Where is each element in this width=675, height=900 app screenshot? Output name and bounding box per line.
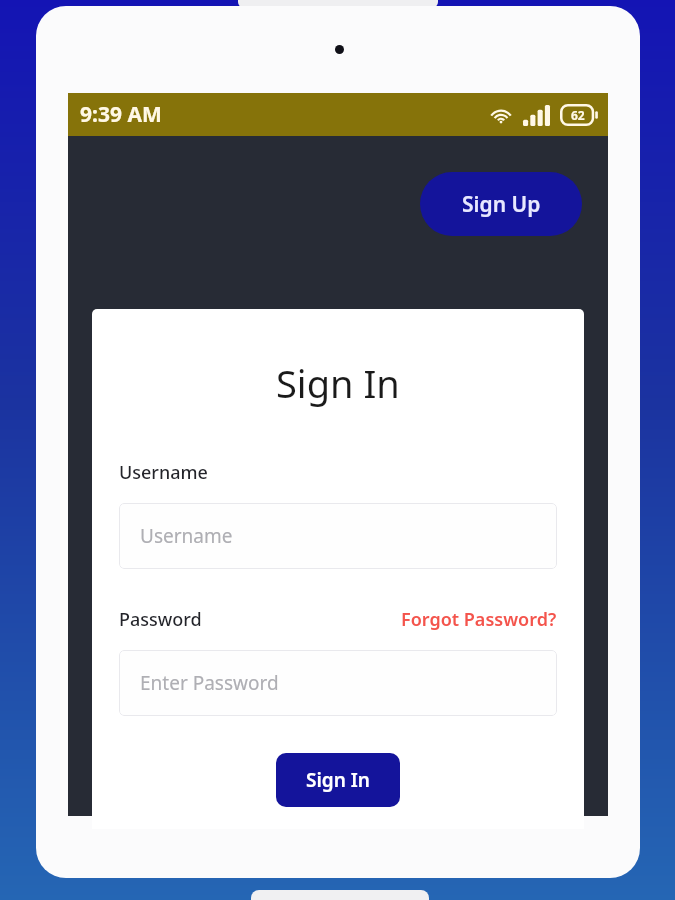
staticText: Forgot Password?	[401, 607, 557, 632]
staticText: Sign In	[306, 767, 370, 793]
button[interactable]: Username	[119, 503, 557, 569]
button[interactable]: Forgot Password?	[401, 607, 557, 632]
staticText: 62	[571, 107, 585, 123]
staticText: Password	[119, 607, 202, 632]
staticText: Username	[119, 460, 208, 485]
staticText: Sign Up	[462, 190, 541, 219]
button[interactable]: Sign Up	[420, 172, 582, 236]
staticText: 9:39 AM	[80, 100, 162, 129]
staticText: Sign In	[276, 357, 400, 409]
button[interactable]: Sign In	[276, 753, 400, 807]
button[interactable]: Enter Password	[119, 650, 557, 716]
staticText: Username	[140, 523, 233, 549]
staticText: Enter Password	[140, 670, 279, 696]
